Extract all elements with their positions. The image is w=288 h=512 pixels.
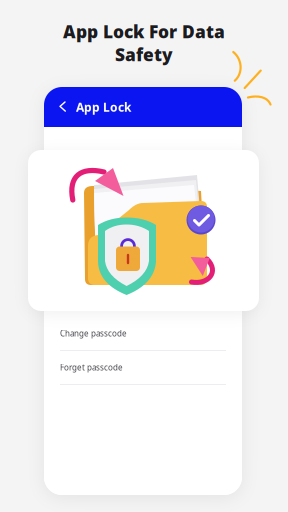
staticText: Change passcode (60, 328, 127, 339)
staticText: App Lock For Data (63, 20, 225, 43)
staticText: Forget passcode (60, 362, 123, 373)
button[interactable]: Back (44, 87, 76, 127)
button[interactable]: Forget passcode (44, 351, 242, 385)
button[interactable]: Change passcode (44, 317, 242, 351)
staticText: App Lock (76, 99, 131, 115)
staticText: Safety (115, 43, 173, 66)
